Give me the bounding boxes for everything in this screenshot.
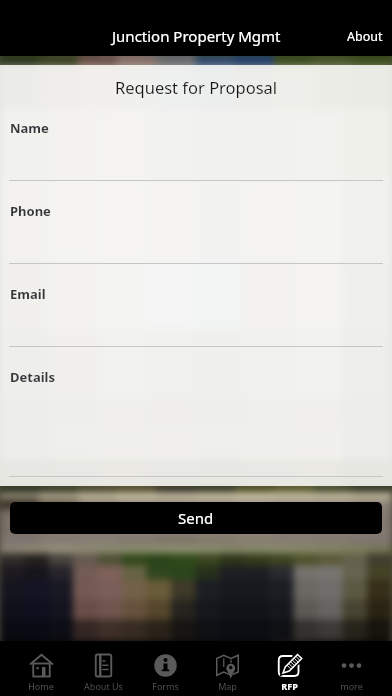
staticText: Details (10, 368, 55, 386)
staticText: About Us (84, 680, 123, 692)
button[interactable]: About (337, 22, 392, 51)
staticText: Junction Property Mgmt (112, 26, 281, 46)
staticText: About (347, 28, 383, 45)
button[interactable]: RFP (258, 641, 320, 696)
staticText: Name (10, 119, 49, 137)
staticText: Map (218, 680, 237, 692)
staticText: Forms (152, 680, 179, 692)
staticText: Email (10, 285, 46, 303)
staticText: more (340, 680, 363, 692)
staticText: Request for Proposal (115, 76, 278, 98)
button[interactable]: Map (196, 641, 258, 696)
staticText: Home (28, 680, 54, 692)
button[interactable]: Home (10, 641, 72, 696)
staticText: RFP (281, 680, 298, 692)
button[interactable]: Send (10, 502, 382, 534)
staticText: Phone (10, 202, 51, 220)
button[interactable]: more (320, 641, 382, 696)
staticText: Send (178, 508, 214, 528)
button[interactable]: Forms (134, 641, 196, 696)
button[interactable]: About Us (72, 641, 134, 696)
